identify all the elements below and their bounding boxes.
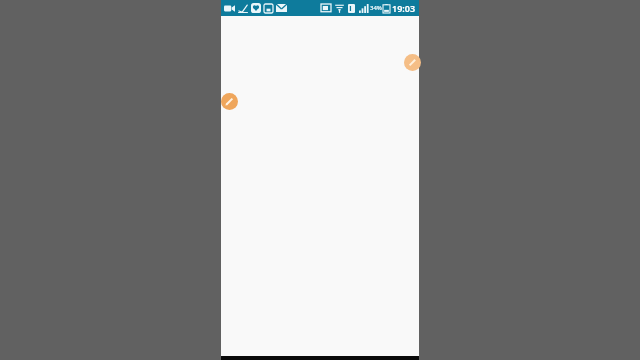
button[interactable]: Compose	[221, 93, 238, 110]
button[interactable]: Compose	[404, 54, 421, 71]
staticText: 34%	[370, 4, 382, 12]
staticText: 19:03	[392, 2, 416, 14]
